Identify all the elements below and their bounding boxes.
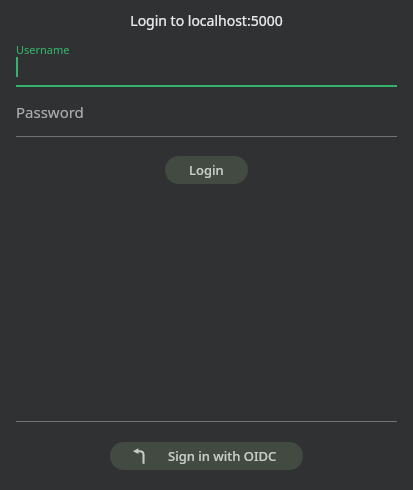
button[interactable]: Username <box>16 42 397 87</box>
staticText: Username <box>16 42 70 57</box>
staticText: Login <box>189 161 224 179</box>
staticText: Sign in with OIDC <box>168 447 277 465</box>
button[interactable]: Sign in with OIDC <box>110 442 303 470</box>
staticText: Password <box>16 102 84 122</box>
button[interactable]: Password <box>16 100 397 137</box>
other: Sign in with OIDC <box>132 448 148 464</box>
button[interactable]: Login <box>165 156 248 184</box>
staticText: Login to localhost:5000 <box>0 11 413 30</box>
